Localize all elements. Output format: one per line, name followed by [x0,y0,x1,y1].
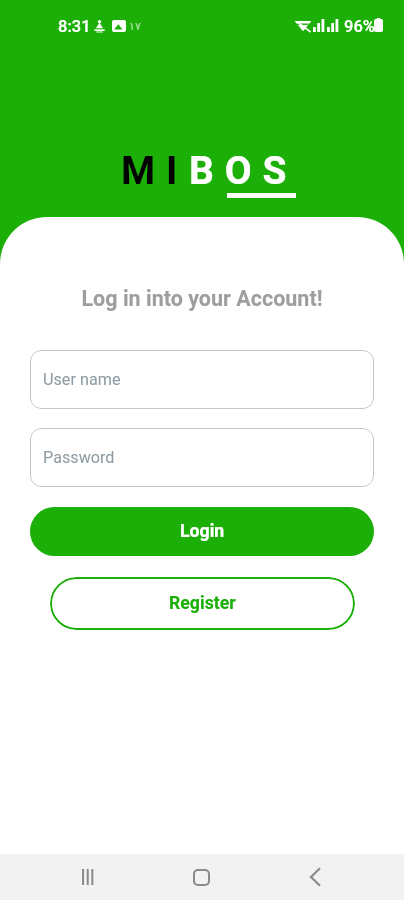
staticText: Log in into your Account! [0,286,404,311]
staticText: ١٧ [129,20,141,33]
staticText: Login [180,521,225,542]
staticText: MI [121,148,189,194]
staticText: BOS [189,148,298,194]
button[interactable]: Back [269,854,360,900]
button[interactable]: Recent apps [42,854,133,900]
staticText: Register [169,593,236,614]
staticText: Password [43,448,115,467]
staticText: User name [43,370,121,389]
button[interactable]: Password [30,428,374,487]
button[interactable]: Home [156,854,247,900]
button[interactable]: User name [30,350,374,409]
staticText: 96% [344,17,375,36]
button[interactable]: Login [30,507,374,556]
staticText: 8:31 [58,17,91,36]
button[interactable]: Register [50,577,355,630]
